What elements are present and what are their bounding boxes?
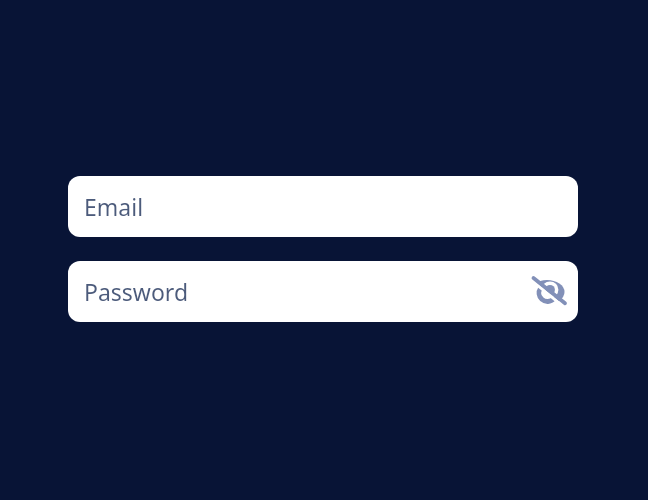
staticText: Email bbox=[84, 191, 144, 222]
button[interactable] bbox=[527, 272, 567, 312]
button[interactable]: Email bbox=[68, 176, 578, 237]
button[interactable]: Password bbox=[68, 261, 578, 322]
staticText: Password bbox=[84, 276, 189, 307]
